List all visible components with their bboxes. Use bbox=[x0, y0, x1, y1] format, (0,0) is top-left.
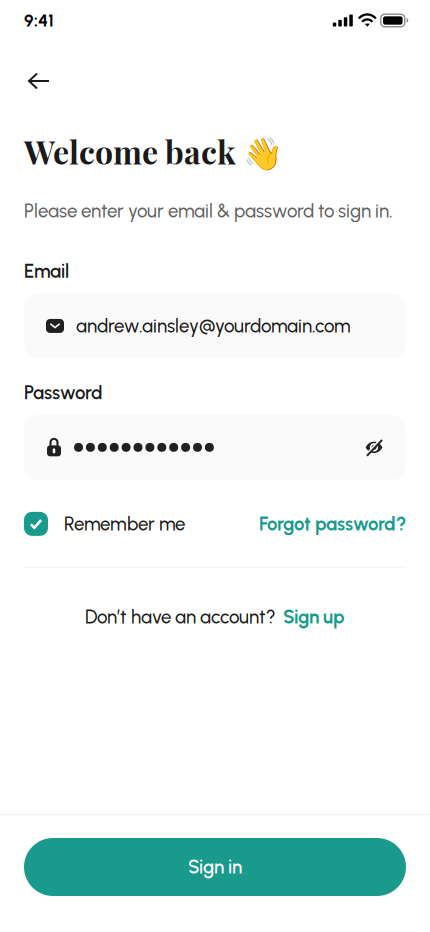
button[interactable]: Sign up bbox=[283, 606, 345, 628]
staticText: Password bbox=[24, 381, 102, 404]
staticText: 9:41 bbox=[24, 10, 54, 31]
button[interactable]: Forgot password? bbox=[259, 513, 406, 535]
staticText: Remember me bbox=[64, 513, 185, 535]
button[interactable]: Show password bbox=[364, 437, 384, 457]
button[interactable]: Remember me bbox=[24, 512, 185, 536]
staticText: Welcome back 👋 bbox=[24, 130, 283, 173]
button[interactable]: Sign in bbox=[0, 838, 430, 896]
staticText: Sign up bbox=[283, 606, 345, 628]
staticText: Please enter your email & password to si… bbox=[24, 200, 393, 222]
staticText: Email bbox=[24, 260, 69, 282]
staticText: Don’t have an account? bbox=[85, 606, 276, 628]
staticText: Sign in bbox=[188, 856, 242, 878]
staticText: Forgot password? bbox=[259, 513, 406, 535]
button[interactable]: Back bbox=[28, 60, 70, 102]
staticText: andrew.ainsley@yourdomain.com bbox=[76, 315, 351, 337]
